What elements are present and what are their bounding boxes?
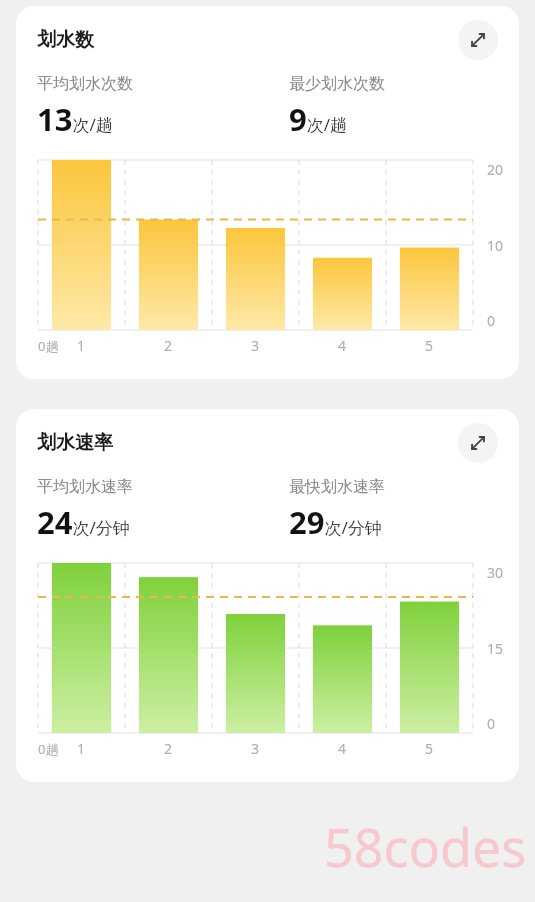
staticText: 1 bbox=[77, 739, 86, 758]
staticText: 20 bbox=[487, 160, 504, 179]
staticText: 9次/趟 bbox=[289, 98, 348, 140]
staticText: 0 bbox=[487, 311, 496, 330]
staticText: 29次/分钟 bbox=[289, 501, 382, 543]
staticText: 15 bbox=[487, 639, 504, 658]
button[interactable]: 划水速率 bbox=[16, 409, 519, 782]
staticText: 0趟 bbox=[38, 337, 59, 355]
staticText: 划水速率 bbox=[37, 431, 113, 455]
staticText: 13次/趟 bbox=[37, 98, 113, 140]
staticText: 4 bbox=[338, 739, 347, 758]
button[interactable]: Expand bbox=[458, 423, 498, 463]
staticText: 划水数 bbox=[37, 28, 94, 52]
staticText: 1 bbox=[77, 336, 86, 355]
staticText: 0趟 bbox=[38, 740, 59, 758]
staticText: 2 bbox=[164, 739, 173, 758]
staticText: 3 bbox=[251, 739, 260, 758]
staticText: 4 bbox=[338, 336, 347, 355]
staticText: 3 bbox=[251, 336, 260, 355]
staticText: 10 bbox=[487, 236, 504, 255]
staticText: 5 bbox=[425, 739, 434, 758]
button[interactable]: 划水数 bbox=[16, 6, 519, 379]
staticText: 2 bbox=[164, 336, 173, 355]
staticText: 58codes bbox=[324, 811, 527, 882]
staticText: 最快划水速率 bbox=[289, 477, 385, 497]
staticText: 平均划水次数 bbox=[37, 74, 133, 94]
staticText: 平均划水速率 bbox=[37, 477, 133, 497]
staticText: 30 bbox=[487, 563, 504, 582]
staticText: 最少划水次数 bbox=[289, 74, 385, 94]
staticText: 5 bbox=[425, 336, 434, 355]
staticText: 24次/分钟 bbox=[37, 501, 130, 543]
button[interactable]: Expand bbox=[458, 20, 498, 60]
staticText: 0 bbox=[487, 714, 496, 733]
